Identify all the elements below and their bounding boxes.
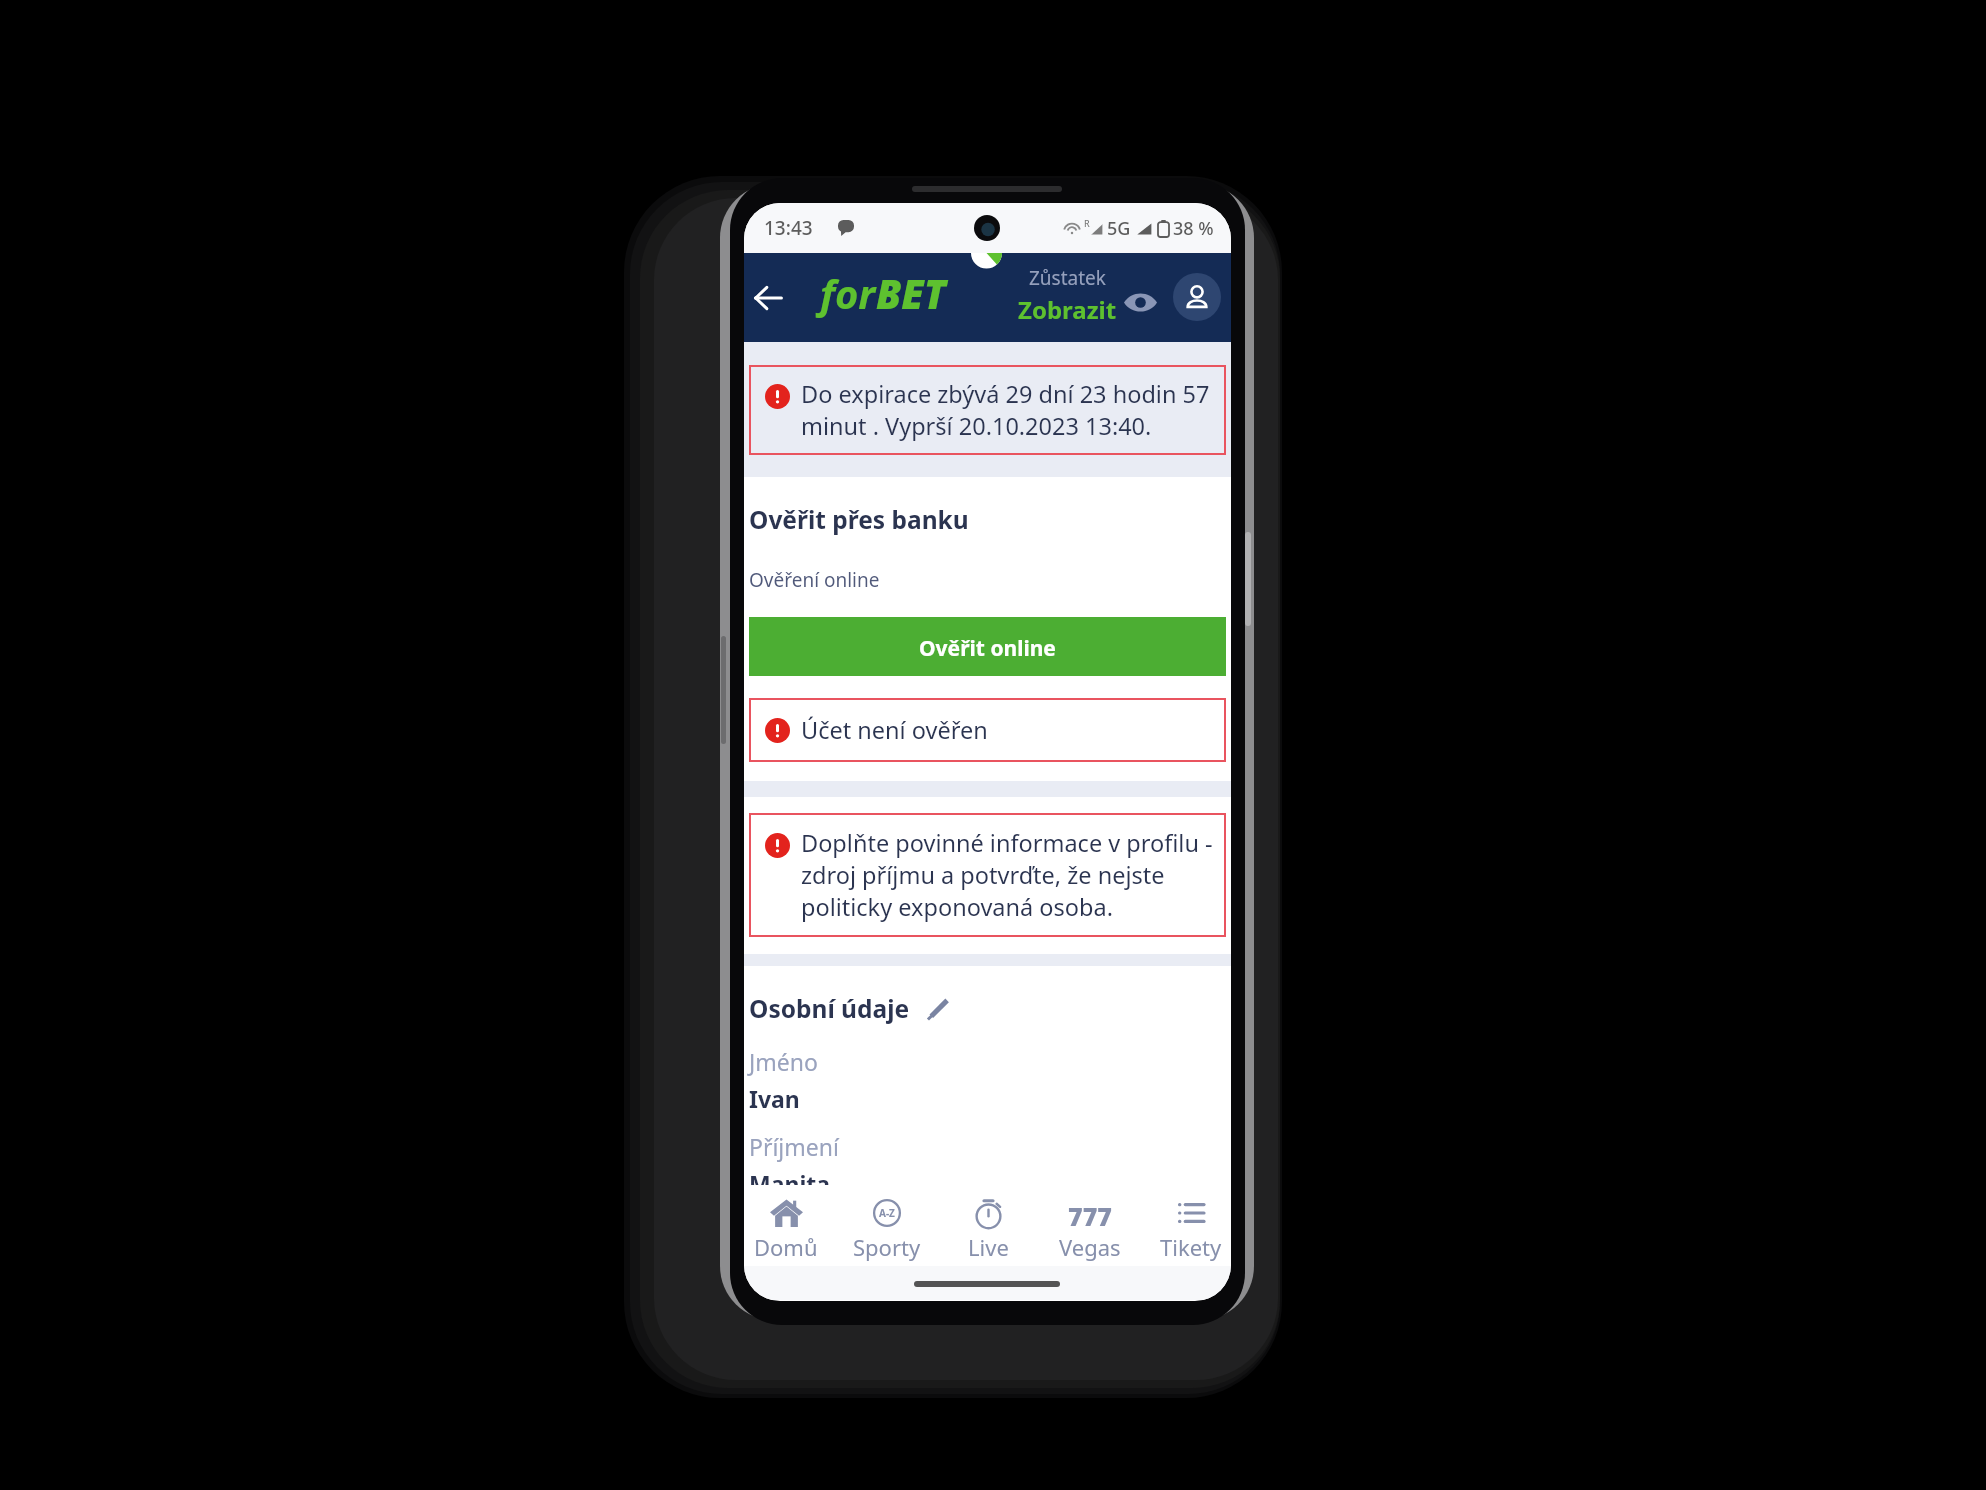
staticText: Příjmení [749,1131,839,1162]
button[interactable]: Account [1173,273,1221,321]
staticText: R [1084,217,1090,229]
button[interactable]: Domů [744,1185,834,1266]
button[interactable]: Back [745,275,791,321]
button[interactable]: Tikety [1143,1185,1231,1266]
staticText: Domů [754,1232,818,1262]
button[interactable]: Zůstatek [987,265,1147,326]
staticText: Tikety [1160,1232,1222,1262]
button[interactable]: Ověřit online [749,617,1226,676]
staticText: Sporty [853,1232,921,1262]
staticText: Vegas [1059,1232,1121,1262]
button[interactable]: 777 [1042,1185,1138,1266]
button[interactable]: Live [940,1185,1036,1266]
staticText: Live [968,1232,1009,1262]
button[interactable]: Edit [924,995,952,1023]
staticText: Zobrazit [1018,293,1117,326]
button[interactable]: A-Z [839,1185,935,1266]
staticText: A-Z [879,1206,895,1220]
staticText: 38 % [1173,216,1214,241]
staticText: Ověření online [749,567,880,593]
staticText: for [820,266,876,320]
staticText: Manita [749,1168,831,1185]
staticText: BET [876,266,946,320]
staticText: Zůstatek [1029,265,1106,291]
staticText: Do expirace zbývá 29 dní 23 hodin 57 min… [801,378,1220,442]
staticText: Ověřit přes banku [749,503,969,536]
button[interactable]: Show balance [1118,280,1162,324]
staticText: 13:43 [764,215,813,241]
staticText: 5G [1107,216,1131,241]
staticText: Osobní údaje [749,992,910,1025]
staticText: Účet není ověřen [801,714,988,746]
staticText: Ověřit online [919,634,1056,663]
staticText: Ivan [749,1083,800,1114]
staticText: Jméno [749,1046,818,1077]
staticText: 777 [1068,1199,1112,1227]
staticText: Doplňte povinné informace v profilu - zd… [801,827,1220,923]
